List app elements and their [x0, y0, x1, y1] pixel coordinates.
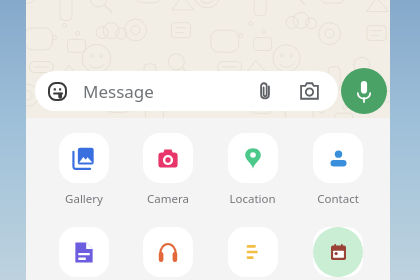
button[interactable]: Emoji: [35, 71, 338, 111]
staticText: Location: [229, 191, 276, 207]
button[interactable]: Attach: [251, 77, 279, 105]
button[interactable]: Audio: [126, 227, 210, 280]
button[interactable]: Poll: [210, 227, 295, 280]
staticText: Gallery: [65, 191, 103, 207]
button[interactable]: Contact: [295, 133, 380, 207]
button[interactable]: Emoji: [43, 77, 71, 105]
button[interactable]: Document: [42, 227, 126, 280]
staticText: Contact: [317, 191, 359, 207]
button[interactable]: Voice message: [341, 68, 387, 114]
button[interactable]: Camera: [126, 133, 210, 207]
button[interactable]: Location: [210, 133, 295, 207]
staticText: Camera: [147, 191, 189, 207]
button[interactable]: Event: [295, 227, 380, 280]
button[interactable]: Camera: [295, 77, 323, 105]
button[interactable]: Gallery: [42, 133, 126, 207]
staticText: Message: [83, 80, 154, 103]
